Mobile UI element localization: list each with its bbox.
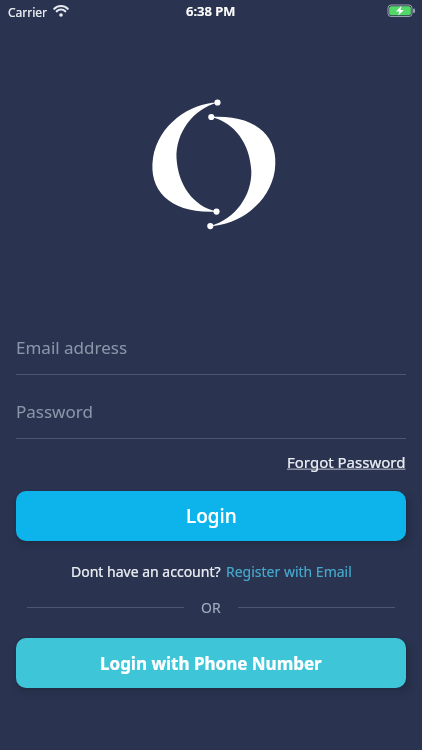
button[interactable]: Login — [16, 491, 406, 541]
staticText: 6:38 PM — [186, 2, 236, 20]
button[interactable]: Register with Email — [226, 562, 352, 581]
staticText: Login with Phone Number — [100, 652, 322, 675]
button[interactable]: Forgot Password — [287, 452, 406, 472]
staticText: Forgot Password — [287, 452, 406, 472]
staticText: Register with Email — [226, 562, 352, 581]
staticText: Login — [186, 503, 237, 529]
staticText: Carrier — [8, 4, 48, 20]
button[interactable]: Email address — [16, 328, 406, 366]
staticText: Dont have an account? — [71, 562, 221, 581]
staticText: OR — [201, 598, 221, 617]
button[interactable]: Password — [16, 392, 406, 430]
staticText: Email address — [16, 336, 128, 359]
staticText: Password — [16, 400, 93, 423]
button[interactable]: Login with Phone Number — [16, 638, 406, 688]
